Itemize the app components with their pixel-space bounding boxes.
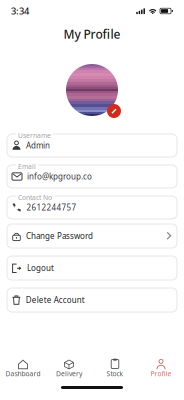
staticText: info@kpgroup.co: [27, 171, 92, 182]
staticText: Admin: [26, 140, 50, 151]
button[interactable]: Profile: [138, 357, 184, 378]
staticText: Delivery: [56, 369, 82, 378]
staticText: My Profile: [63, 26, 120, 42]
staticText: Delete Account: [26, 295, 85, 305]
staticText: Contact No: [18, 193, 52, 202]
staticText: Logout: [27, 263, 54, 273]
button[interactable]: Delivery: [46, 357, 92, 378]
staticText: Email: [18, 162, 36, 171]
staticText: Dashboard: [5, 369, 40, 378]
staticText: Change Password: [26, 231, 93, 241]
button[interactable]: Logout: [7, 256, 177, 280]
staticText: Profile: [150, 369, 171, 378]
button[interactable]: Edit profile photo: [64, 64, 120, 118]
staticText: 2612244757: [26, 202, 76, 213]
staticText: Stock: [106, 369, 123, 378]
staticText: Username: [18, 131, 51, 140]
button[interactable]: Delete Account: [7, 288, 177, 312]
button[interactable]: Change Password: [7, 224, 177, 248]
button[interactable]: Stock: [92, 357, 138, 378]
button[interactable]: Dashboard: [0, 357, 46, 378]
staticText: 3:34: [11, 5, 29, 17]
